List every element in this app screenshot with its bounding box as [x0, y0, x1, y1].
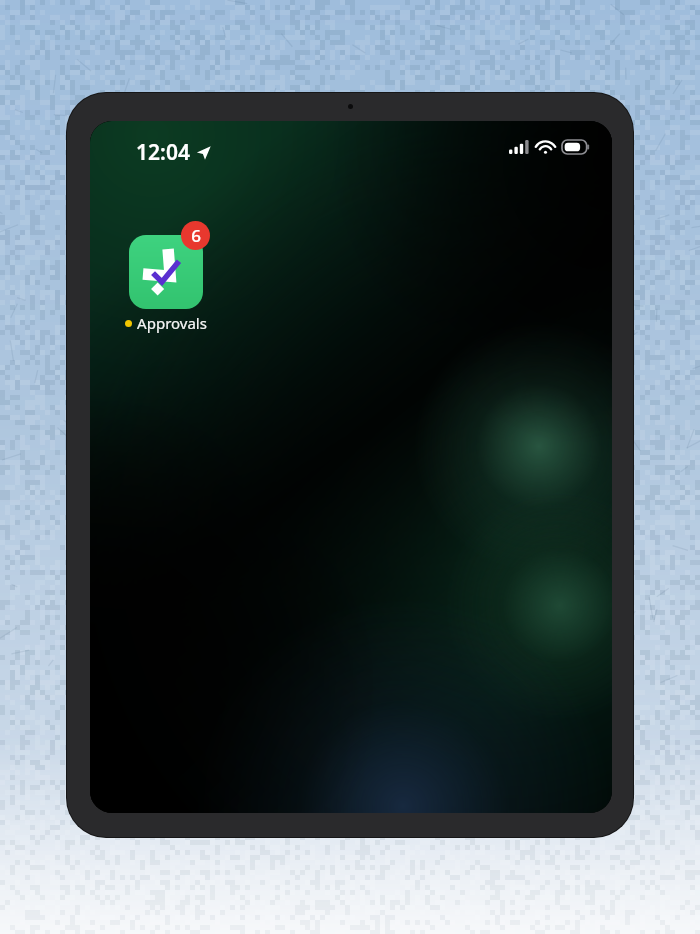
staticText: 12:04: [136, 138, 190, 167]
staticText: 6: [191, 224, 201, 247]
button[interactable]: Approvals app: [122, 221, 210, 309]
staticText: Approvals: [137, 313, 207, 333]
